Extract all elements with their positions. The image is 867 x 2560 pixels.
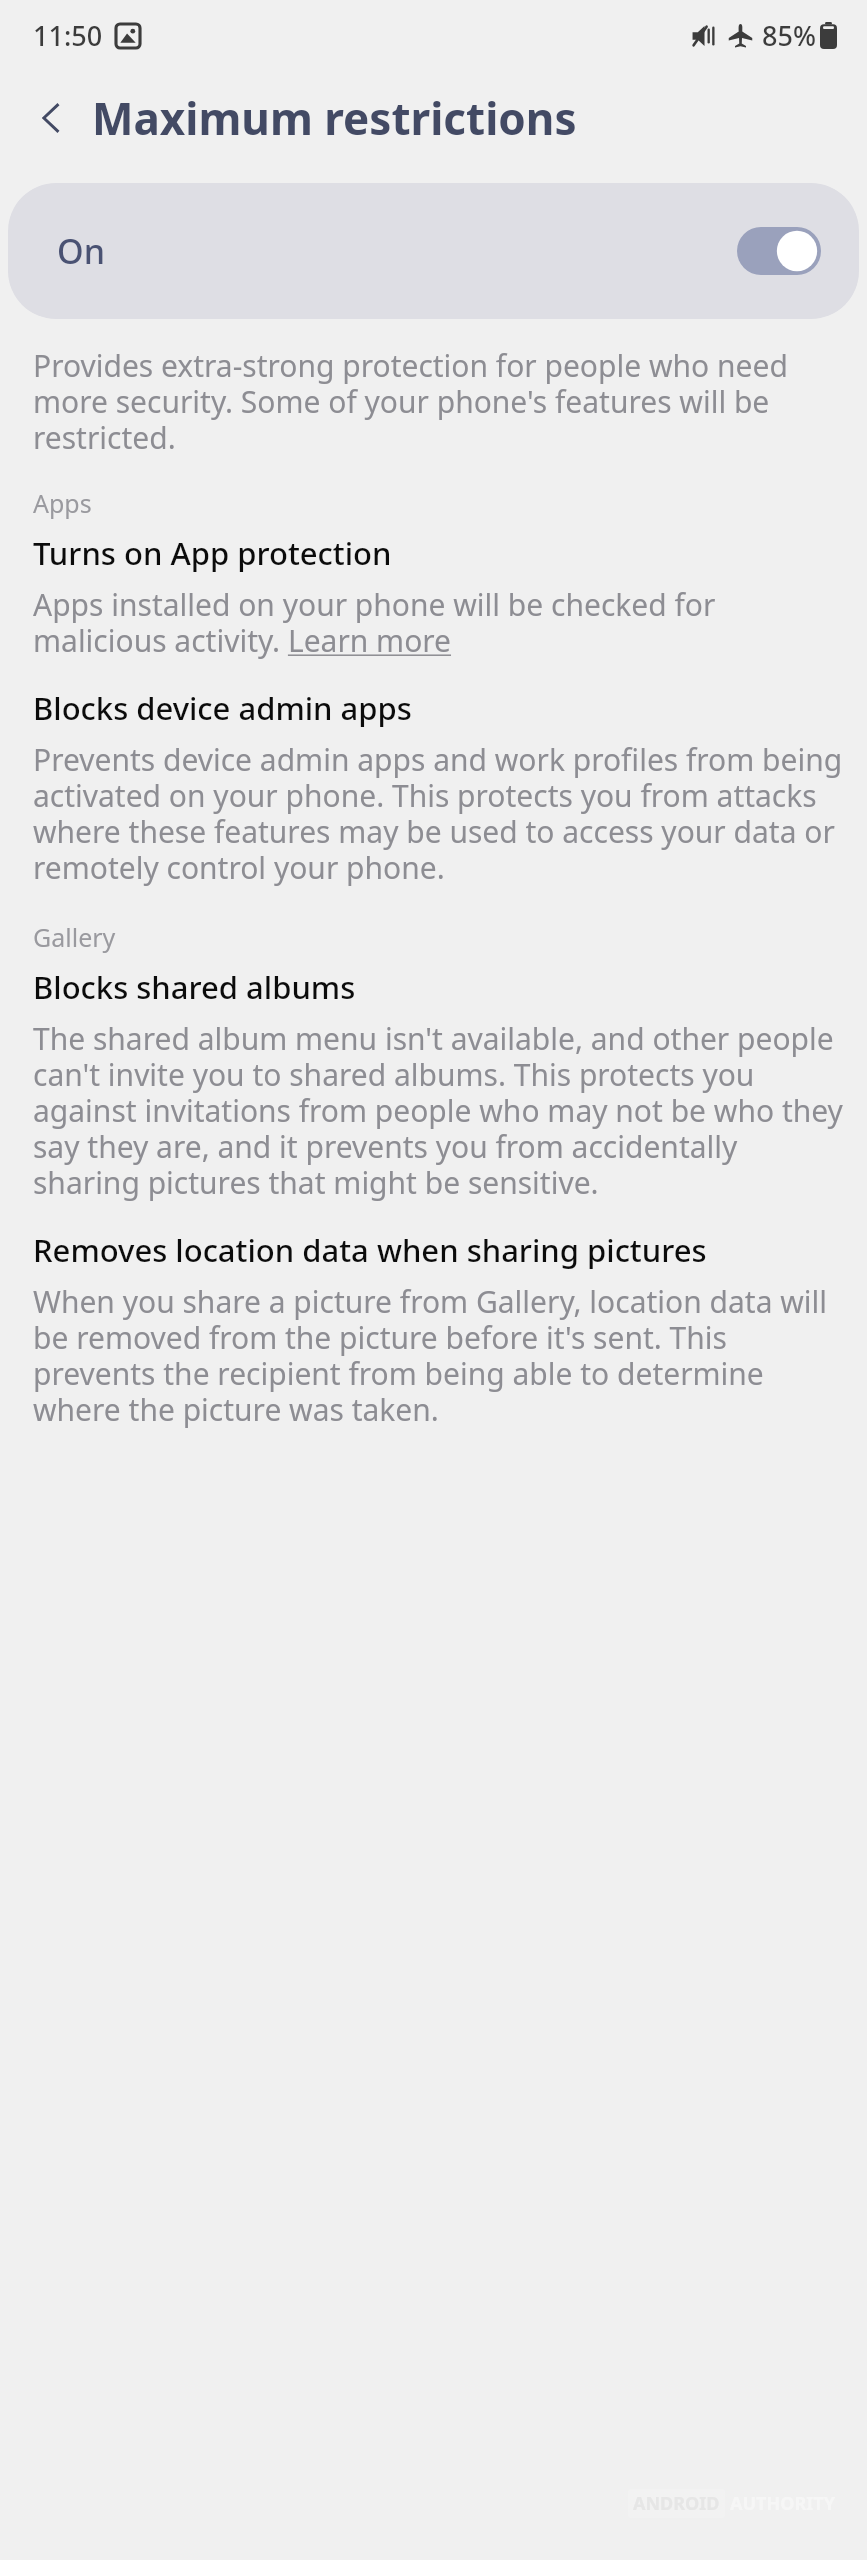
staticText: ANDROID	[633, 2491, 720, 2516]
staticText: Blocks shared albums	[33, 966, 356, 1008]
staticText: Gallery	[33, 920, 116, 954]
staticText: Blocks device admin apps	[33, 687, 412, 729]
staticText: Prevents device admin apps and work prof…	[33, 739, 843, 888]
staticText: On	[57, 228, 105, 274]
staticText: Apps installed on your phone will be che…	[33, 584, 843, 661]
staticText: Removes location data when sharing pictu…	[33, 1229, 707, 1271]
staticText: The shared album menu isn't available, a…	[33, 1018, 843, 1203]
button[interactable]: Back	[22, 88, 82, 148]
staticText: 11:50	[33, 17, 103, 54]
staticText: Apps	[33, 486, 92, 520]
staticText: Provides extra-strong protection for peo…	[33, 345, 843, 458]
staticText: Turns on App protection	[33, 532, 392, 574]
staticText: Maximum restrictions	[92, 88, 577, 148]
staticText: When you share a picture from Gallery, l…	[33, 1281, 843, 1430]
button[interactable]: On	[8, 183, 859, 319]
staticText: 85%	[762, 17, 816, 54]
